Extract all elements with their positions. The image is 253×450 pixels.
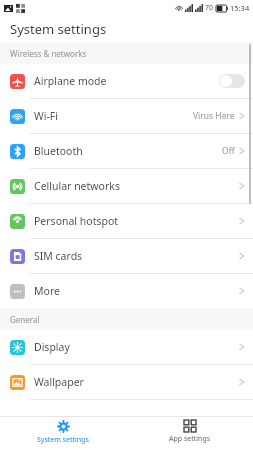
button[interactable]: System settings (0, 417, 126, 450)
staticText: Off (222, 145, 235, 157)
staticText: Wireless & networks (10, 48, 87, 59)
button[interactable]: Personal hotspot (0, 204, 253, 238)
staticText: Display (34, 340, 70, 354)
staticText: Cellular networks (34, 179, 120, 193)
staticText: General (10, 314, 40, 325)
staticText: Airplane mode (34, 74, 107, 88)
staticText: More (34, 284, 60, 298)
staticText: Bluetooth (34, 144, 83, 158)
button[interactable]: Display (0, 330, 253, 364)
staticText: Virus Here (193, 110, 235, 122)
button[interactable]: SIM cards (0, 239, 253, 273)
button[interactable]: Wallpaper (0, 365, 253, 399)
staticText: System settings (10, 20, 107, 38)
staticText: Wallpaper (34, 375, 84, 389)
staticText: 70 (205, 3, 214, 13)
button[interactable]: Airplane mode toggle (219, 74, 245, 88)
button[interactable]: Wi-Fi (0, 99, 253, 133)
staticText: SIM cards (34, 249, 83, 263)
staticText: System settings (37, 435, 89, 445)
button[interactable]: App settings (126, 417, 253, 450)
staticText: Wi-Fi (34, 109, 59, 123)
button[interactable]: More (0, 274, 253, 308)
button[interactable]: Airplane mode (0, 64, 253, 98)
staticText: Personal hotspot (34, 214, 119, 228)
staticText: App settings (169, 434, 211, 444)
button[interactable]: Cellular networks (0, 169, 253, 203)
button[interactable]: Bluetooth (0, 134, 253, 168)
staticText: 15:34 (230, 3, 250, 13)
